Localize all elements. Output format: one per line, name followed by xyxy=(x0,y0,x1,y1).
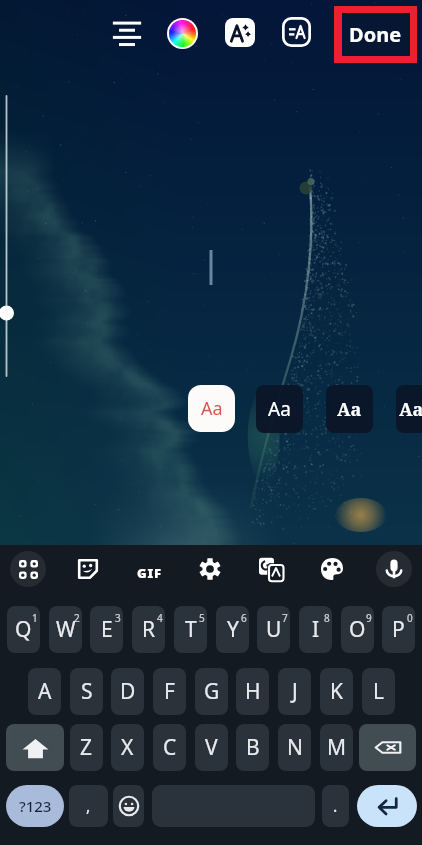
staticText: 0 xyxy=(407,611,413,625)
button[interactable]: Align text xyxy=(102,8,152,58)
staticText: L xyxy=(373,677,385,706)
staticText: O xyxy=(349,615,366,644)
button[interactable]: Emoji xyxy=(113,785,144,827)
staticText: N xyxy=(287,733,303,762)
button[interactable]: W xyxy=(49,606,82,653)
staticText: I xyxy=(312,615,320,644)
button[interactable]: ?123 xyxy=(6,785,64,827)
staticText: Z xyxy=(80,733,93,762)
button[interactable]: Themes xyxy=(312,549,352,589)
staticText: T xyxy=(185,615,197,644)
staticText: G xyxy=(204,677,220,706)
button[interactable]: Shift xyxy=(6,724,64,771)
staticText: S xyxy=(81,677,93,706)
button[interactable]: I xyxy=(299,606,332,653)
button[interactable]: T xyxy=(174,606,207,653)
button[interactable]: Text effects xyxy=(225,18,255,47)
button[interactable]: E xyxy=(90,606,123,653)
button[interactable]: . xyxy=(322,785,349,827)
button[interactable]: Aa xyxy=(256,385,303,433)
button[interactable]: V xyxy=(195,724,228,771)
staticText: A xyxy=(38,677,52,706)
button[interactable]: N xyxy=(278,724,311,771)
staticText: B xyxy=(246,733,260,762)
staticText: 4 xyxy=(157,611,163,625)
button[interactable]: K xyxy=(320,668,353,715)
staticText: 5 xyxy=(199,611,205,625)
button[interactable]: GIF xyxy=(127,551,171,595)
button[interactable]: A xyxy=(28,668,61,715)
staticText: . xyxy=(333,795,338,817)
button[interactable]: R xyxy=(132,606,165,653)
button[interactable]: U xyxy=(257,606,290,653)
staticText: F xyxy=(164,677,175,706)
staticText: 7 xyxy=(282,611,288,625)
staticText: 9 xyxy=(366,611,372,625)
button[interactable]: Aa xyxy=(396,385,422,433)
button[interactable]: , xyxy=(69,785,108,827)
staticText: 1 xyxy=(32,611,38,625)
button[interactable]: P xyxy=(382,606,415,653)
staticText: GIF xyxy=(137,564,162,582)
staticText: , xyxy=(86,795,91,817)
staticText: Done xyxy=(349,21,402,48)
staticText: K xyxy=(330,677,343,706)
staticText: E xyxy=(101,615,113,644)
button[interactable]: M xyxy=(320,724,353,771)
button[interactable]: O xyxy=(341,606,374,653)
button[interactable]: Enter xyxy=(357,785,417,827)
button[interactable]: Voice input xyxy=(376,551,412,587)
staticText: Aa xyxy=(201,396,223,421)
staticText: V xyxy=(205,733,218,762)
button[interactable]: H xyxy=(236,668,269,715)
staticText: 3 xyxy=(115,611,121,625)
staticText: R xyxy=(142,615,156,644)
staticText: U xyxy=(266,615,282,644)
button[interactable]: Z xyxy=(70,724,103,771)
button[interactable]: Q xyxy=(7,606,40,653)
button[interactable]: Stickers xyxy=(68,549,108,589)
button[interactable]: D xyxy=(111,668,144,715)
button[interactable]: Done xyxy=(334,6,417,63)
button[interactable]: J xyxy=(278,668,311,715)
button[interactable]: B xyxy=(236,724,269,771)
staticText: H xyxy=(245,677,261,706)
button[interactable]: X xyxy=(111,724,144,771)
button[interactable]: C xyxy=(153,724,186,771)
button[interactable]: L xyxy=(362,668,395,715)
button[interactable]: Settings xyxy=(190,549,230,589)
button[interactable]: Y xyxy=(216,606,249,653)
staticText: X xyxy=(121,733,134,762)
button[interactable]: Text style xyxy=(282,17,311,47)
button[interactable]: Backspace xyxy=(359,724,416,771)
staticText: 8 xyxy=(324,611,330,625)
staticText: C xyxy=(163,733,177,762)
staticText: Q xyxy=(15,615,32,644)
staticText: Aa xyxy=(268,396,291,422)
staticText: 6 xyxy=(241,611,247,625)
button[interactable]: S xyxy=(70,668,103,715)
button[interactable]: Translate xyxy=(251,549,291,589)
button[interactable]: F xyxy=(153,668,186,715)
staticText: Y xyxy=(227,615,239,644)
button[interactable]: Color xyxy=(167,18,198,49)
staticText: ?123 xyxy=(19,796,52,816)
button[interactable]: G xyxy=(195,668,228,715)
staticText: D xyxy=(120,677,136,706)
staticText: Aa xyxy=(337,397,362,422)
staticText: J xyxy=(292,677,298,706)
button[interactable]: Apps xyxy=(10,551,46,587)
staticText: W xyxy=(56,615,76,644)
staticText: M xyxy=(327,733,347,762)
staticText: P xyxy=(392,615,405,644)
button[interactable]: Aa xyxy=(188,385,235,432)
staticText: 2 xyxy=(74,611,80,625)
staticText: Aa xyxy=(399,397,422,422)
button[interactable]: Aa xyxy=(326,385,373,433)
